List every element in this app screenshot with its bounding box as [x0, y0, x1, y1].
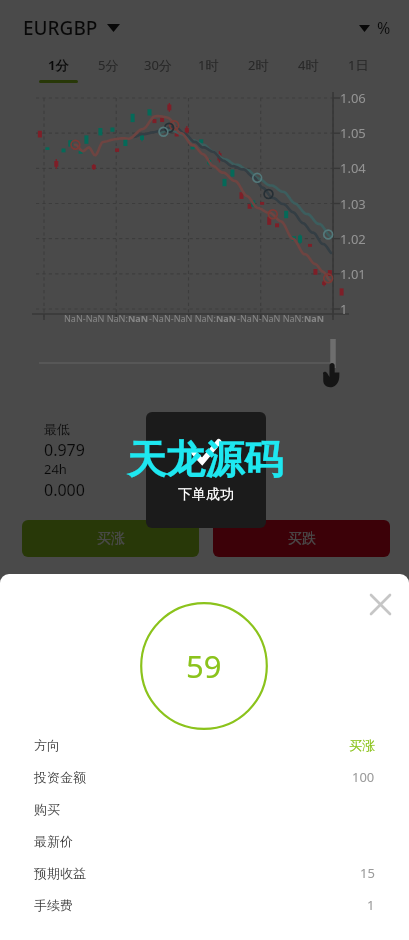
- staticText: 1: [340, 300, 348, 318]
- staticText: 方向: [34, 737, 60, 753]
- staticText: 24h: [44, 460, 67, 478]
- staticText: 15: [360, 864, 375, 882]
- staticText: 1.04: [340, 159, 366, 177]
- button[interactable]: 买跌: [213, 520, 390, 557]
- staticText: 30分: [144, 56, 172, 74]
- staticText: 1.03: [340, 195, 366, 213]
- button[interactable]: 手续费: [34, 889, 375, 921]
- staticText: 1.065: [207, 439, 248, 461]
- staticText: 投资金额: [34, 769, 86, 785]
- staticText: 2时: [248, 56, 269, 74]
- button[interactable]: Display mode percent: [359, 17, 391, 39]
- staticText: 购买: [34, 801, 60, 817]
- staticText: NaN-NaN NaN:: [240, 312, 304, 324]
- staticText: 1分: [48, 56, 69, 74]
- button[interactable]: 2时: [233, 56, 283, 80]
- staticText: 买涨: [97, 530, 125, 548]
- staticText: 最低: [44, 421, 70, 437]
- staticText: 1.02: [340, 230, 366, 248]
- staticText: 1.05: [340, 124, 366, 142]
- button[interactable]: 5分: [83, 56, 133, 80]
- button[interactable]: 4时: [283, 56, 333, 80]
- button[interactable]: 购买: [34, 793, 375, 825]
- staticText: 预期收益: [34, 865, 86, 881]
- staticText: 1.06: [340, 89, 366, 107]
- staticText: 0.979: [44, 439, 85, 461]
- staticText: NaN: [216, 312, 237, 324]
- button[interactable]: 预期收益: [34, 857, 375, 889]
- staticText: 买涨: [349, 737, 375, 753]
- staticText: -: [237, 312, 240, 324]
- staticText: 59: [186, 645, 222, 687]
- staticText: 5分: [98, 56, 119, 74]
- staticText: %: [377, 17, 391, 39]
- staticText: 1时: [198, 56, 219, 74]
- staticText: NaN-NaN NaN:: [64, 312, 128, 324]
- staticText: 天龙源码: [127, 435, 283, 484]
- button[interactable]: EURGBP: [23, 15, 120, 41]
- button[interactable]: 1分: [34, 56, 83, 83]
- staticText: 1日: [348, 56, 369, 74]
- button[interactable]: 最新价: [34, 825, 375, 857]
- staticText: EURGBP: [23, 15, 98, 41]
- staticText: NaN: [304, 312, 325, 324]
- staticText: -: [149, 312, 152, 324]
- staticText: 最新价: [34, 833, 73, 849]
- staticText: 1: [367, 896, 375, 914]
- staticText: 手续费: [34, 897, 73, 913]
- staticText: 100: [352, 768, 375, 786]
- staticText: 0.000: [44, 479, 85, 501]
- button[interactable]: 方向: [34, 729, 375, 761]
- staticText: 4时: [298, 56, 319, 74]
- staticText: 下单成功: [178, 486, 234, 504]
- button[interactable]: 买涨: [22, 520, 199, 557]
- button[interactable]: Close: [363, 587, 397, 621]
- button[interactable]: 1时: [183, 56, 233, 80]
- staticText: NaN-NaN NaN:: [152, 312, 216, 324]
- button[interactable]: 1日: [333, 56, 383, 80]
- staticText: 1.01: [340, 265, 366, 283]
- staticText: NaN: [128, 312, 149, 324]
- staticText: 买跌: [288, 530, 316, 548]
- button[interactable]: 投资金额: [34, 761, 375, 793]
- button[interactable]: 30分: [133, 56, 183, 80]
